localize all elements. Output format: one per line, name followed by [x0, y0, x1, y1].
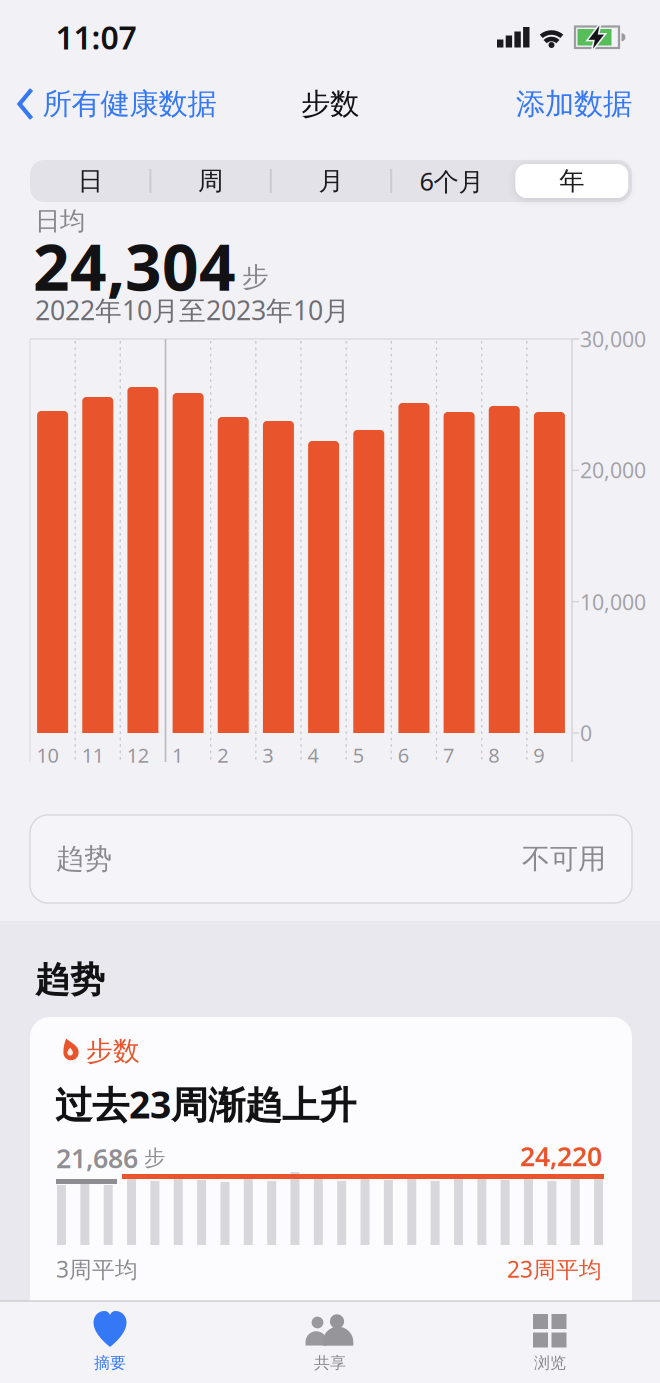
staticText: 20,000 — [580, 456, 646, 484]
staticText: 步数 — [301, 86, 359, 122]
staticText: 24,304 — [33, 223, 236, 308]
staticText: 21,686 — [56, 1140, 138, 1176]
staticText: 趋势 — [56, 842, 112, 876]
staticText: 日均 — [35, 205, 85, 236]
staticText: 所有健康数据 — [42, 86, 216, 122]
button[interactable]: 月 — [273, 160, 389, 202]
staticText: 年 — [559, 165, 584, 196]
staticText: 摘要 — [94, 1353, 126, 1373]
staticText: 9 — [533, 742, 544, 768]
staticText: 7 — [443, 742, 454, 768]
button[interactable] — [30, 1017, 632, 1383]
staticText: 8 — [488, 742, 499, 768]
staticText: 步数 — [86, 1035, 140, 1067]
button[interactable]: 年 — [514, 160, 630, 202]
staticText: 步 — [242, 261, 269, 293]
staticText: 不可用 — [522, 842, 606, 876]
staticText: 浏览 — [534, 1353, 566, 1373]
staticText: 月 — [318, 165, 343, 196]
staticText: 添加数据 — [516, 86, 632, 122]
staticText: 3 — [262, 742, 273, 768]
staticText: 12 — [127, 742, 149, 768]
staticText: 步 — [144, 1145, 165, 1171]
button[interactable]: 所有健康数据 — [17, 86, 216, 122]
staticText: 日 — [78, 165, 103, 196]
staticText: 23周平均 — [507, 1254, 602, 1284]
staticText: 2 — [217, 742, 228, 768]
button[interactable]: 浏览 — [450, 1301, 650, 1383]
staticText: 24,220 — [520, 1138, 602, 1174]
staticText: 0 — [580, 719, 592, 747]
staticText: 10,000 — [580, 588, 646, 616]
button[interactable]: 趋势 — [30, 815, 632, 903]
button[interactable]: 日 — [32, 160, 148, 202]
staticText: 6 — [398, 742, 409, 768]
staticText: 4 — [307, 742, 318, 768]
staticText: 过去23周渐趋上升 — [55, 1079, 356, 1129]
staticText: 3周平均 — [56, 1254, 138, 1284]
staticText: 趋势 — [35, 959, 105, 1001]
staticText: 10 — [36, 742, 58, 768]
button[interactable]: 6个月 — [393, 160, 510, 202]
staticText: 共享 — [314, 1353, 346, 1373]
staticText: 11:07 — [55, 16, 136, 58]
staticText: 周 — [198, 165, 223, 196]
staticText: 30,000 — [580, 325, 646, 353]
button[interactable]: 摘要 — [10, 1301, 210, 1383]
staticText: 2022年10月至2023年10月 — [35, 292, 350, 328]
staticText: 6个月 — [419, 164, 483, 198]
staticText: 11 — [82, 742, 104, 768]
button[interactable]: 添加数据 — [516, 86, 632, 122]
staticText: 1 — [172, 742, 183, 768]
button[interactable]: 周 — [152, 160, 269, 202]
staticText: 5 — [353, 742, 364, 768]
button[interactable]: 共享 — [230, 1301, 430, 1383]
